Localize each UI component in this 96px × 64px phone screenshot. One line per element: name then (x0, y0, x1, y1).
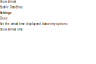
staticText: Enable Data Entry (0, 5, 22, 9)
staticText: Show Arrival Time (0, 28, 23, 31)
staticText: Set the arrival time display and data en… (0, 22, 67, 26)
staticText: Settings (0, 11, 11, 15)
staticText: Show Arrival (0, 0, 16, 3)
staticText: Done (0, 17, 8, 20)
